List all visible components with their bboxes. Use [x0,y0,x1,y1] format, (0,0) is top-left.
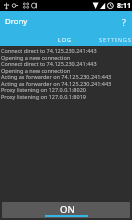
staticText: Acting as forwarder on 74.125.230.241:44… [1,80,112,87]
staticText: SETTINGS [99,36,132,44]
staticText: Opening a new connection [1,54,71,61]
button[interactable]: LOG [40,31,90,46]
staticText: ? [122,16,126,28]
staticText: Acting as forwarder on 74.125.230.241:44… [1,73,112,80]
staticText: Opening a new connection [1,67,71,74]
button[interactable]: ON [2,202,130,218]
staticText: LOG [58,36,72,44]
staticText: Proxy listening on 127.0.0.1:8020 [1,86,86,93]
staticText: Connect direct to 74.125.230.241:443 [1,47,97,54]
button[interactable]: Help [116,11,132,31]
staticText: Drony [5,16,28,27]
staticText: ON [60,203,75,216]
staticText: Connect direct to 74.125.230.241:443 [1,60,97,67]
button[interactable]: SETTINGS [90,31,132,46]
staticText: Proxy listening on 127.0.0.1:8019 [1,93,86,100]
staticText: 8:11 [117,1,131,11]
